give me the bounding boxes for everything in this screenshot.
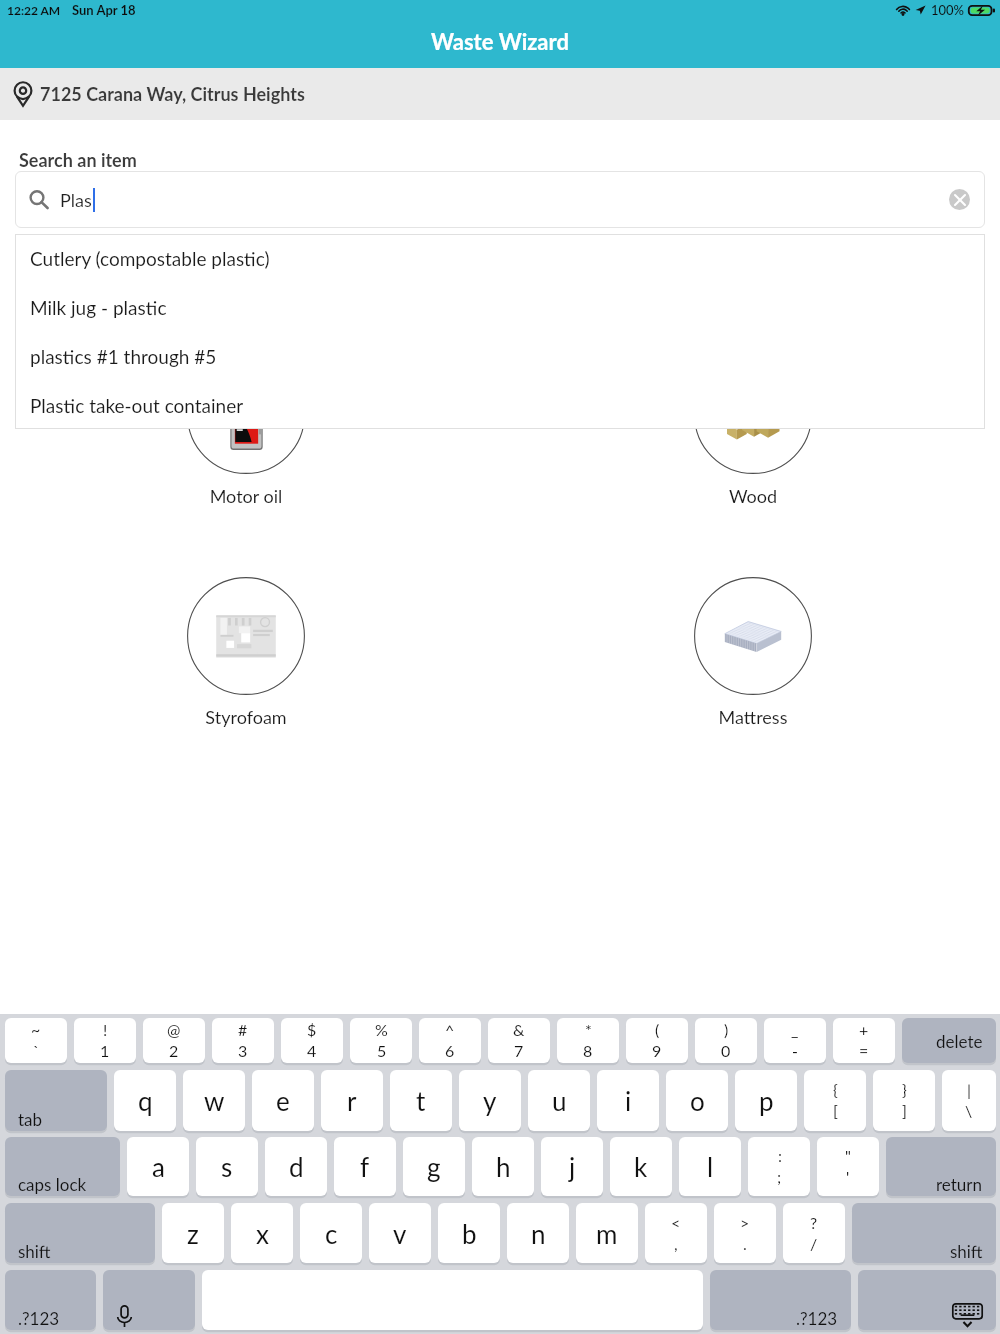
button[interactable]: c [300, 1203, 362, 1263]
button[interactable]: caps lock [5, 1137, 120, 1196]
button[interactable]: f [334, 1137, 396, 1196]
staticText: ` [33, 1041, 40, 1060]
button[interactable]: x [231, 1203, 293, 1263]
button[interactable]: | [942, 1070, 996, 1131]
staticText: Waste Wizard [431, 28, 569, 54]
button[interactable]: g [403, 1137, 465, 1196]
button[interactable]: Mattress [668, 577, 838, 728]
button[interactable]: * [557, 1018, 619, 1063]
button[interactable]: } [873, 1070, 935, 1131]
staticText: _ [791, 1020, 799, 1039]
staticText: Plastic take-out container [30, 394, 244, 417]
staticText: + [859, 1020, 869, 1039]
button[interactable]: " [817, 1137, 879, 1196]
staticText: j [569, 1151, 576, 1182]
staticText: z [187, 1218, 199, 1249]
button[interactable]: p [735, 1070, 797, 1131]
button[interactable]: w [183, 1070, 245, 1131]
button[interactable]: { [804, 1070, 866, 1131]
button[interactable]: Plas [15, 171, 985, 228]
button[interactable]: Styrofoam [161, 577, 331, 728]
button[interactable]: plastics #1 through #5 [15, 332, 985, 381]
staticText: u [552, 1085, 567, 1116]
button[interactable]: ) [695, 1018, 757, 1063]
button[interactable]: Clear search [949, 189, 970, 210]
button[interactable]: y [459, 1070, 521, 1131]
button[interactable]: ! [74, 1018, 136, 1063]
button[interactable]: shift [5, 1203, 155, 1263]
button[interactable]: return [886, 1137, 996, 1196]
staticText: g [427, 1151, 441, 1182]
button[interactable]: b [438, 1203, 500, 1263]
staticText: q [138, 1085, 153, 1116]
button[interactable]: t [390, 1070, 452, 1131]
button[interactable]: j [541, 1137, 603, 1196]
button[interactable]: > [714, 1203, 776, 1263]
staticText: ( [655, 1020, 660, 1039]
button[interactable]: i [597, 1070, 659, 1131]
button[interactable]: ^ [419, 1018, 481, 1063]
button[interactable]: 7125 Carana Way, Citrus Heights [13, 68, 1000, 120]
staticText: > [740, 1213, 750, 1232]
button[interactable]: o [666, 1070, 728, 1131]
staticText: ' [846, 1167, 850, 1186]
staticText: 0 [721, 1041, 731, 1060]
button[interactable]: z [162, 1203, 224, 1263]
button[interactable]: % [350, 1018, 412, 1063]
button[interactable]: e [252, 1070, 314, 1131]
button[interactable]: .?123 [710, 1270, 851, 1330]
staticText: Milk jug - plastic [30, 296, 167, 319]
button[interactable]: ~ [5, 1018, 67, 1063]
staticText: Mattress [668, 706, 838, 728]
button[interactable]: u [528, 1070, 590, 1131]
button[interactable]: h [472, 1137, 534, 1196]
button[interactable]: Wood [668, 356, 838, 507]
button[interactable]: v [369, 1203, 431, 1263]
staticText: 100% [931, 2, 965, 18]
button[interactable]: @ [143, 1018, 205, 1063]
button[interactable]: r [321, 1070, 383, 1131]
button[interactable]: m [576, 1203, 638, 1263]
button[interactable]: l [679, 1137, 741, 1196]
button[interactable]: ( [626, 1018, 688, 1063]
button[interactable]: Cutlery (compostable plastic) [15, 234, 985, 283]
button[interactable]: s [196, 1137, 258, 1196]
staticText: , [674, 1234, 678, 1253]
button[interactable]: Plastic take-out container [15, 381, 985, 429]
staticText: r [347, 1085, 357, 1116]
button[interactable]: Hide keyboard [858, 1270, 996, 1330]
staticText: % [375, 1020, 388, 1039]
button[interactable]: + [833, 1018, 895, 1063]
button[interactable]: : [748, 1137, 810, 1196]
staticText: ) [724, 1020, 729, 1039]
button[interactable]: $ [281, 1018, 343, 1063]
button[interactable]: Milk jug - plastic [15, 283, 985, 332]
staticText: w [204, 1085, 225, 1116]
button[interactable]: shift [852, 1203, 996, 1263]
button[interactable]: ? [783, 1203, 845, 1263]
staticText: ~ [31, 1020, 41, 1039]
button[interactable]: k [610, 1137, 672, 1196]
button[interactable]: n [507, 1203, 569, 1263]
button[interactable]: a [127, 1137, 189, 1196]
button[interactable]: .?123 [5, 1270, 96, 1330]
button[interactable]: & [488, 1018, 550, 1063]
staticText: : [778, 1146, 782, 1165]
staticText: Search an item [19, 149, 137, 171]
button[interactable]: # [212, 1018, 274, 1063]
staticText: Wood [668, 485, 838, 507]
staticText: o [690, 1085, 705, 1116]
staticText: $ [307, 1020, 317, 1039]
staticText: ; [777, 1167, 782, 1186]
button[interactable]: tab [5, 1070, 107, 1131]
button[interactable]: d [265, 1137, 327, 1196]
staticText: 3 [238, 1041, 248, 1060]
staticText: 12:22 AM [7, 3, 61, 17]
button[interactable]: _ [764, 1018, 826, 1063]
button[interactable]: delete [902, 1018, 996, 1063]
button[interactable]: < [645, 1203, 707, 1263]
button[interactable]: Dictate [103, 1270, 195, 1330]
button[interactable]: q [114, 1070, 176, 1131]
button[interactable]: Motor oil [161, 356, 331, 507]
